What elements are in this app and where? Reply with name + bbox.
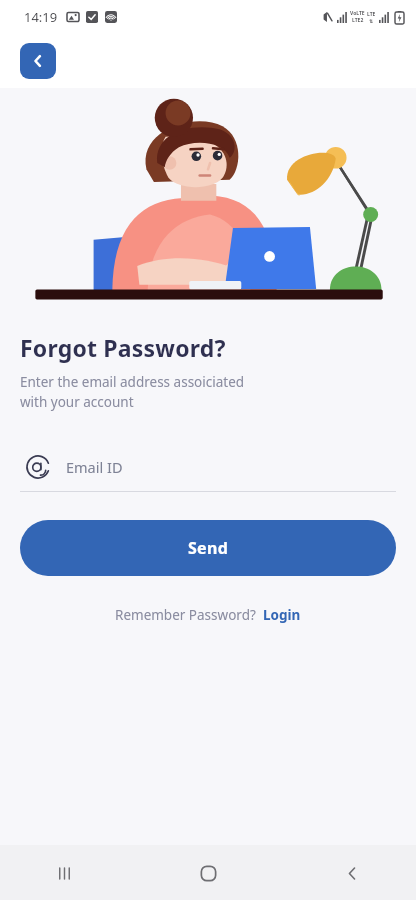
button[interactable]: Email ID bbox=[20, 455, 396, 492]
button[interactable]: Home bbox=[184, 849, 232, 897]
staticText: ⇅ bbox=[369, 18, 374, 24]
staticText: Login bbox=[263, 606, 301, 624]
staticText: 14:19 bbox=[24, 8, 58, 26]
button[interactable]: Back bbox=[20, 43, 56, 79]
staticText: VoLTE bbox=[350, 10, 365, 17]
staticText: LTE bbox=[367, 11, 376, 18]
staticText: Email ID bbox=[66, 457, 123, 477]
button[interactable]: Login bbox=[263, 606, 301, 624]
staticText: Enter the email address assoiciated with… bbox=[20, 373, 245, 411]
staticText: Send bbox=[188, 537, 229, 559]
staticText: LTE2 bbox=[352, 17, 364, 24]
button[interactable]: Back bbox=[328, 849, 376, 897]
button[interactable]: Recent apps bbox=[40, 849, 88, 897]
button[interactable]: Send bbox=[20, 520, 396, 576]
staticText: Remember Password? bbox=[115, 606, 256, 624]
staticText: Forgot Password? bbox=[20, 332, 226, 363]
